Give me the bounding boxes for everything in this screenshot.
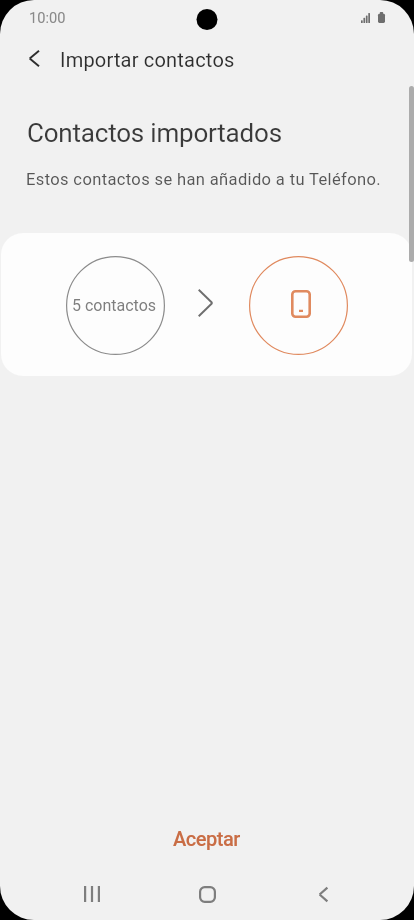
button[interactable]: Back bbox=[279, 870, 359, 920]
staticText: Contactos importados bbox=[27, 118, 282, 148]
button[interactable]: Home bbox=[167, 870, 247, 920]
button[interactable]: Aceptar bbox=[0, 812, 414, 864]
button[interactable]: 5 contactos bbox=[1, 233, 412, 376]
staticText: Aceptar bbox=[173, 827, 240, 850]
button[interactable]: Back bbox=[10, 34, 58, 82]
staticText: Estos contactos se han añadido a tu Telé… bbox=[26, 170, 381, 189]
button[interactable]: Recent apps bbox=[52, 870, 132, 920]
staticText: 5 contactos bbox=[72, 296, 157, 315]
staticText: 10:00 bbox=[29, 9, 66, 26]
staticText: Importar contactos bbox=[60, 48, 235, 71]
